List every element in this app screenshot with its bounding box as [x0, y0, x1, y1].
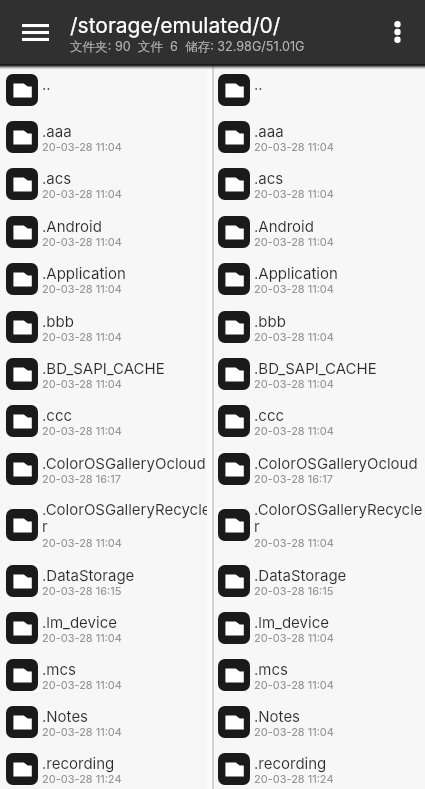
button[interactable]: .aaa [0, 121, 212, 153]
button[interactable]: .. [212, 74, 425, 106]
staticText: 20-03-28 11:04 [254, 140, 334, 153]
staticText: .bbb [42, 312, 74, 330]
staticText: .BD_SAPI_CACHE [254, 359, 377, 377]
staticText: /storage/emulated/0/ [70, 13, 281, 38]
staticText: .lm_device [42, 613, 117, 631]
button[interactable]: .ccc [0, 405, 212, 437]
button[interactable]: .Application [0, 263, 212, 295]
staticText: .mcs [254, 660, 288, 678]
button[interactable]: .Application [212, 263, 425, 295]
button[interactable]: .mcs [212, 659, 425, 691]
button[interactable]: .acs [0, 168, 212, 200]
staticText: 20-03-28 11:04 [42, 377, 122, 390]
staticText: 20-03-28 11:04 [42, 330, 122, 343]
staticText: .ccc [42, 406, 73, 424]
staticText: .. [42, 75, 51, 93]
staticText: 20-03-28 16:17 [42, 472, 121, 485]
staticText: .aaa [42, 122, 72, 140]
button[interactable]: .ColorOSGalleryRecycler [0, 500, 212, 549]
staticText: .ColorOSGalleryOcloud [254, 454, 418, 472]
staticText: 20-03-28 11:04 [42, 678, 122, 691]
staticText: 20-03-28 11:04 [42, 631, 122, 644]
button[interactable]: .recording [212, 753, 425, 785]
staticText: .Android [254, 217, 314, 235]
staticText: .aaa [254, 122, 284, 140]
staticText: .ccc [254, 406, 285, 424]
staticText: 20-03-28 16:15 [254, 584, 334, 597]
button[interactable]: .mcs [0, 659, 212, 691]
staticText: 20-03-28 11:04 [254, 424, 334, 437]
button[interactable]: .acs [212, 168, 425, 200]
staticText: 20-03-28 11:04 [42, 235, 122, 248]
button[interactable]: .BD_SAPI_CACHE [0, 358, 212, 390]
button[interactable]: .DataStorage [0, 565, 212, 597]
button[interactable]: More options [369, 0, 425, 64]
staticText: 20-03-28 11:04 [42, 424, 122, 437]
staticText: 20-03-28 11:04 [42, 187, 122, 200]
staticText: 20-03-28 16:15 [42, 584, 122, 597]
staticText: .recording [42, 754, 115, 772]
staticText: 20-03-28 11:04 [254, 678, 334, 691]
staticText: .acs [42, 169, 72, 187]
button[interactable]: .ColorOSGalleryOcloud [212, 453, 425, 485]
staticText: .BD_SAPI_CACHE [42, 359, 165, 377]
staticText: 20-03-28 11:04 [254, 235, 334, 248]
button[interactable]: .DataStorage [212, 565, 425, 597]
button[interactable]: .lm_device [212, 612, 425, 644]
button[interactable]: .Android [0, 216, 212, 248]
button[interactable]: .aaa [212, 121, 425, 153]
button[interactable]: .lm_device [0, 612, 212, 644]
button[interactable]: .ccc [212, 405, 425, 437]
button[interactable]: .bbb [212, 311, 425, 343]
staticText: 20-03-28 11:04 [254, 330, 334, 343]
staticText: 20-03-28 11:24 [254, 772, 334, 785]
button[interactable]: .bbb [0, 311, 212, 343]
staticText: 20-03-28 11:04 [254, 187, 334, 200]
staticText: .mcs [42, 660, 76, 678]
staticText: 20-03-28 11:24 [42, 772, 122, 785]
staticText: .DataStorage [254, 566, 347, 584]
staticText: .ColorOSGalleryOcloud [42, 454, 206, 472]
staticText: .acs [254, 169, 284, 187]
button[interactable]: .ColorOSGalleryOcloud [0, 453, 212, 485]
staticText: 20-03-28 11:04 [254, 282, 334, 295]
staticText: .ColorOSGalleryRecycler [254, 500, 425, 536]
button[interactable]: .Notes [212, 706, 425, 738]
staticText: .recording [254, 754, 327, 772]
staticText: .DataStorage [42, 566, 135, 584]
button[interactable]: .Notes [0, 706, 212, 738]
staticText: .. [254, 75, 263, 93]
staticText: 20-03-28 16:17 [254, 472, 333, 485]
staticText: .Notes [42, 707, 89, 725]
staticText: 20-03-28 11:04 [254, 536, 334, 549]
staticText: 20-03-28 11:04 [42, 725, 122, 738]
button[interactable]: Open navigation drawer [0, 0, 70, 64]
staticText: .Application [254, 264, 338, 282]
staticText: .ColorOSGalleryRecycler [42, 500, 212, 536]
staticText: 20-03-28 11:04 [42, 282, 122, 295]
button[interactable]: .recording [0, 753, 212, 785]
staticText: .lm_device [254, 613, 329, 631]
staticText: 20-03-28 11:04 [254, 725, 334, 738]
staticText: 20-03-28 11:04 [42, 536, 122, 549]
staticText: 20-03-28 11:04 [254, 377, 334, 390]
staticText: 20-03-28 11:04 [254, 631, 334, 644]
button[interactable]: .BD_SAPI_CACHE [212, 358, 425, 390]
button[interactable]: .. [0, 74, 212, 106]
staticText: .bbb [254, 312, 286, 330]
staticText: .Android [42, 217, 102, 235]
staticText: .Application [42, 264, 126, 282]
button[interactable]: .Android [212, 216, 425, 248]
staticText: 20-03-28 11:04 [42, 140, 122, 153]
staticText: 文件夹: 90 文件 6 储存: 32.98G/51.01G [70, 39, 305, 55]
button[interactable]: .ColorOSGalleryRecycler [212, 500, 425, 549]
staticText: .Notes [254, 707, 301, 725]
